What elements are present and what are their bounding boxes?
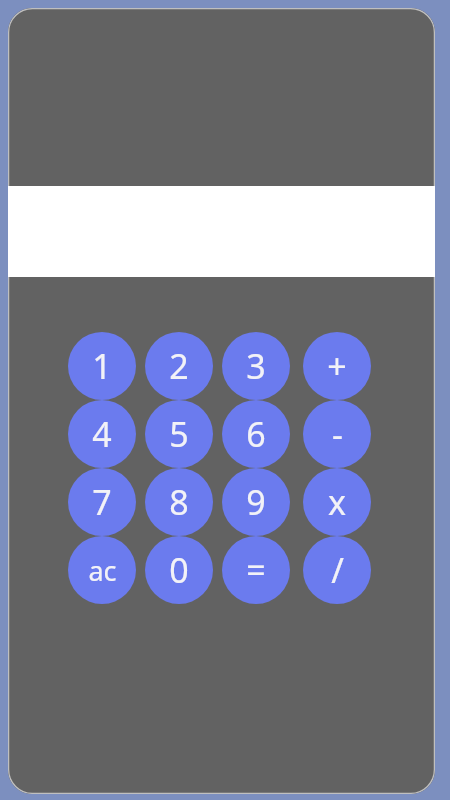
button[interactable]: 0 (145, 536, 213, 604)
button[interactable]: 3 (222, 332, 290, 400)
staticText: x (328, 479, 346, 525)
button[interactable]: 8 (145, 468, 213, 536)
button[interactable]: 7 (68, 468, 136, 536)
button[interactable]: 5 (145, 400, 213, 468)
staticText: / (331, 547, 344, 593)
button[interactable]: 4 (68, 400, 136, 468)
button[interactable]: ac (68, 536, 136, 604)
staticText: - (332, 411, 343, 457)
button[interactable]: 1 (68, 332, 136, 400)
staticText: 8 (169, 479, 189, 525)
button[interactable]: 9 (222, 468, 290, 536)
staticText: 4 (92, 411, 112, 457)
staticText: 3 (246, 343, 266, 389)
staticText: ac (88, 552, 117, 589)
staticText: 1 (92, 343, 112, 389)
staticText: 6 (246, 411, 266, 457)
staticText: = (246, 547, 266, 593)
button[interactable]: / (303, 536, 371, 604)
staticText: 7 (92, 479, 112, 525)
staticText: + (327, 343, 347, 389)
staticText: 5 (169, 411, 189, 457)
staticText: 9 (246, 479, 266, 525)
button[interactable]: x (303, 468, 371, 536)
staticText: 0 (169, 547, 189, 593)
button[interactable]: 6 (222, 400, 290, 468)
button[interactable]: = (222, 536, 290, 604)
button[interactable]: - (303, 400, 371, 468)
button[interactable]: + (303, 332, 371, 400)
button[interactable]: 2 (145, 332, 213, 400)
staticText: 2 (169, 343, 189, 389)
